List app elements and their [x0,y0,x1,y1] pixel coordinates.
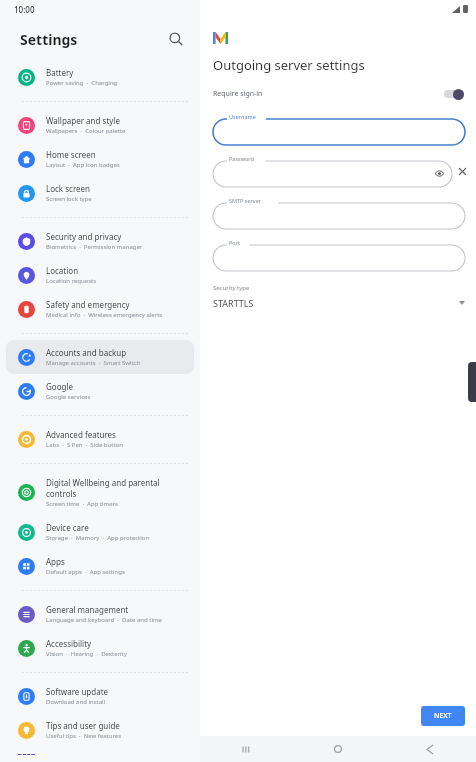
button[interactable]: Accounts and backup [6,340,194,374]
staticText: Advanced features [46,429,116,440]
staticText: Location requests [46,277,97,285]
button[interactable]: Show password [433,167,446,180]
staticText: Require sign-in [213,89,263,99]
button[interactable]: Wallpaper and style [6,108,194,142]
staticText: Medical info · Wireless emergency alerts [46,311,163,319]
button[interactable]: Home screen [6,142,194,176]
button[interactable]: General management [6,597,194,631]
staticText: Apps [46,556,65,567]
staticText: Google services [46,393,91,401]
staticText: Software update [46,686,109,697]
staticText: Wallpaper and style [46,115,120,126]
staticText: Port [229,239,240,246]
staticText: Settings [20,30,78,49]
staticText: Lock screen [46,183,91,194]
button[interactable]: Security and privacy [6,224,194,258]
button[interactable]: Security type [200,284,476,309]
staticText: Accounts and backup [46,347,127,358]
button[interactable]: Digital Wellbeing and parental controls [6,470,194,515]
button[interactable]: Search [160,23,192,55]
button[interactable]: Require sign-in toggle [443,88,465,100]
button[interactable]: SMTP server [213,197,465,229]
button[interactable]: Lock screen [6,176,194,210]
staticText: Battery [46,67,74,78]
staticText: Google [46,381,73,392]
button[interactable]: Advanced features [6,422,194,456]
button[interactable]: Accessibility [6,631,194,665]
button[interactable]: Password [213,155,452,187]
button[interactable]: Safety and emergency [6,292,194,326]
staticText: NEXT [434,711,452,721]
button[interactable]: Port [213,239,465,271]
staticText: Security type [213,284,250,292]
staticText: Username [229,113,256,120]
button[interactable]: Home [292,736,384,762]
staticText: Home screen [46,149,96,160]
button[interactable]: Back [384,736,476,762]
staticText: Default apps · App settings [46,568,125,576]
button[interactable]: Location [6,258,194,292]
staticText: Manage accounts · Smart Switch [46,359,141,367]
staticText: SMTP server [229,197,261,204]
button[interactable]: Require sign-in [200,86,476,102]
button[interactable]: NEXT [421,706,465,726]
button[interactable]: Edge panel handle [468,362,476,402]
staticText: Useful tips · New features [46,732,122,740]
staticText: Security and privacy [46,231,122,242]
button[interactable]: Tips and user guide [6,713,194,747]
staticText: Outgoing server settings [213,56,365,74]
staticText: Accessibility [46,638,92,649]
button[interactable]: Battery [6,60,194,94]
staticText: Storage · Memory · App protection [46,534,150,542]
staticText: Download and install [46,698,106,706]
staticText: STARTTLS [213,297,254,309]
button[interactable]: Apps [6,549,194,583]
staticText: General management [46,604,129,615]
staticText: Tips and user guide [46,720,120,731]
staticText: Labs · S Pen · Side button [46,441,123,449]
staticText: Digital Wellbeing and parental controls [46,477,186,499]
staticText: Password [229,155,254,162]
staticText: Power saving · Charging [46,79,118,87]
staticText: Location [46,265,79,276]
button[interactable]: Username [213,113,465,145]
staticText: Screen lock type [46,195,92,203]
button[interactable]: Software update [6,679,194,713]
staticText: Vision · Hearing · Dexterity [46,650,127,658]
staticText: Screen time · App timers [46,500,118,508]
staticText: Biometrics · Permission manager [46,243,143,251]
button[interactable]: Clear password [454,163,470,179]
button[interactable]: Recent apps [200,736,292,762]
staticText: Language and keyboard · Date and time [46,616,162,624]
staticText: Device care [46,522,89,533]
button[interactable]: Device care [6,515,194,549]
staticText: 10:00 [14,4,35,15]
staticText: Safety and emergency [46,299,130,310]
staticText: Layout · App icon badges [46,161,120,169]
staticText: Wallpapers · Colour palette [46,127,126,135]
button[interactable]: Google [6,374,194,408]
button[interactable]: About tablet [6,747,194,762]
